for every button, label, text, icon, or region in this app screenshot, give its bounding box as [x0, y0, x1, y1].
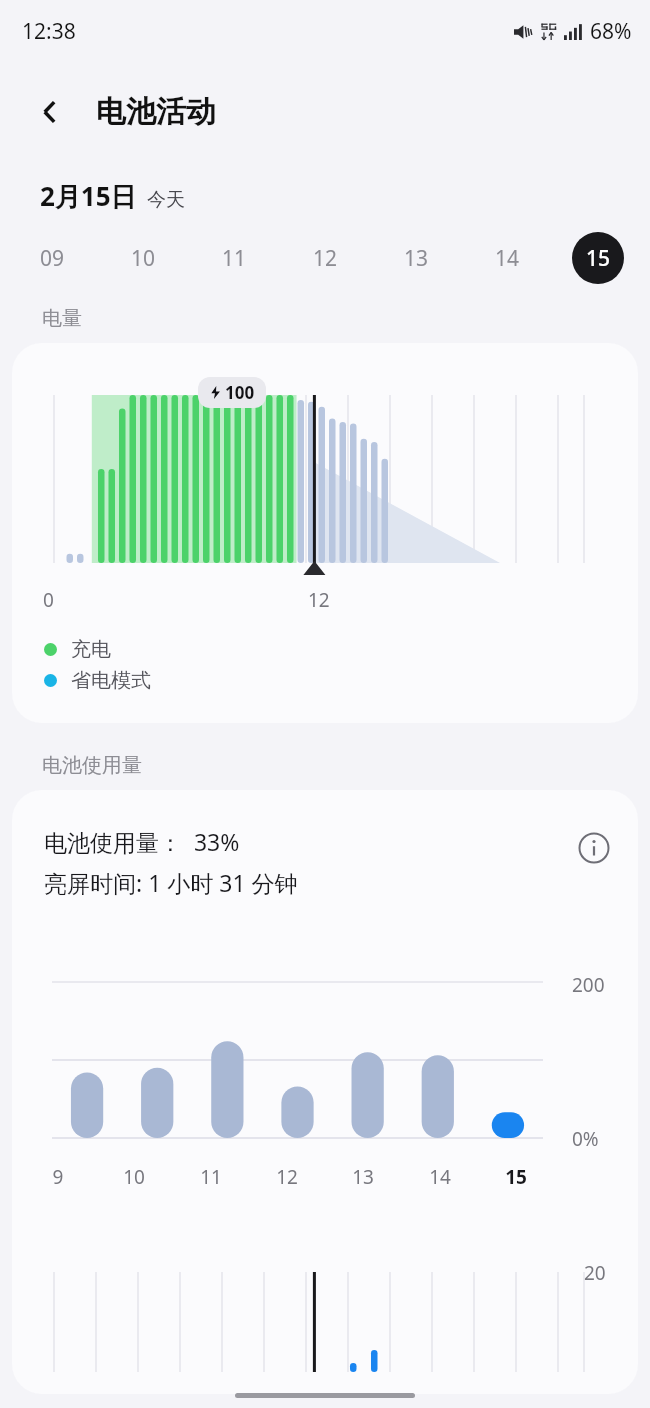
staticText: 13: [404, 244, 429, 273]
button[interactable]: 11: [208, 232, 260, 284]
button[interactable]: 14: [481, 232, 533, 284]
staticText: 12:38: [22, 17, 76, 46]
staticText: 9: [36, 1164, 80, 1190]
staticText: 今天: [147, 188, 185, 212]
staticText: 10: [112, 1164, 156, 1190]
staticText: 11: [189, 1164, 233, 1190]
staticText: 12: [265, 1164, 309, 1190]
button[interactable]: 电池使用量： 33%: [12, 790, 638, 1394]
button[interactable]: 12: [299, 232, 351, 284]
staticText: 电池使用量: [42, 753, 142, 778]
staticText: 12: [313, 244, 338, 273]
staticText: 15: [586, 244, 611, 273]
button[interactable]: Info: [572, 826, 616, 870]
staticText: 电量: [42, 306, 82, 331]
staticText: 20: [584, 1260, 606, 1286]
staticText: 亮屏时间: 1 小时 31 分钟: [44, 867, 298, 898]
staticText: 200: [572, 972, 605, 998]
staticText: 68%: [590, 17, 632, 46]
staticText: 省电模式: [71, 668, 151, 693]
button[interactable]: Back: [26, 88, 74, 136]
staticText: 0: [43, 587, 54, 613]
staticText: 14: [495, 244, 520, 273]
button[interactable]: 13: [390, 232, 442, 284]
staticText: 15: [494, 1164, 538, 1190]
button[interactable]: 15: [572, 232, 624, 284]
staticText: 0%: [572, 1126, 599, 1152]
staticText: 13: [341, 1164, 385, 1190]
staticText: 电池活动: [96, 93, 216, 131]
staticText: 12: [308, 587, 330, 613]
button[interactable]: 100: [12, 343, 638, 723]
staticText: 100: [225, 381, 255, 404]
button[interactable]: 10: [117, 232, 169, 284]
staticText: 11: [222, 244, 247, 273]
staticText: 09: [40, 244, 65, 273]
staticText: 充电: [71, 637, 111, 662]
button[interactable]: 09: [26, 232, 78, 284]
staticText: 电池使用量： 33%: [44, 826, 240, 857]
staticText: 2月15日: [40, 178, 137, 214]
staticText: 10: [131, 244, 156, 273]
staticText: 14: [418, 1164, 462, 1190]
